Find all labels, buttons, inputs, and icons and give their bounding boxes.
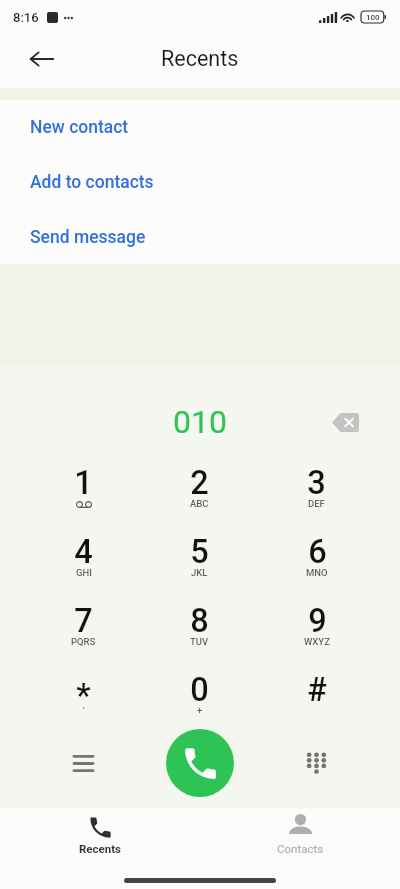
staticText: 3 xyxy=(307,464,326,497)
button[interactable]: Call xyxy=(166,729,234,797)
staticText: ABC xyxy=(190,498,209,509)
staticText: DEF xyxy=(308,498,325,509)
staticText: 5 xyxy=(190,533,209,566)
staticText: 9 xyxy=(308,602,327,635)
button[interactable]: * xyxy=(25,672,141,741)
staticText: 100 xyxy=(366,13,380,22)
button[interactable]: Send message xyxy=(0,210,400,265)
staticText: 010 xyxy=(173,403,227,441)
button[interactable]: 9 xyxy=(258,603,375,672)
button[interactable]: Backspace xyxy=(323,400,367,444)
button[interactable]: Back xyxy=(19,36,64,81)
staticText: 8 xyxy=(190,602,209,635)
staticText: + xyxy=(197,705,203,716)
staticText: 0 xyxy=(190,671,209,704)
staticText: MNO xyxy=(306,567,328,578)
staticText: 7 xyxy=(74,602,93,635)
staticText: Send message xyxy=(30,227,146,248)
button[interactable]: 2 xyxy=(141,465,258,534)
staticText: Contacts xyxy=(277,842,324,855)
button[interactable]: 5 xyxy=(141,534,258,603)
staticText: Recents xyxy=(79,842,122,855)
button[interactable]: 3 xyxy=(258,465,375,534)
button[interactable]: Call log xyxy=(25,729,141,797)
button[interactable]: # xyxy=(258,672,375,741)
button[interactable]: Add to contacts xyxy=(0,155,400,210)
button[interactable]: 0 xyxy=(141,672,258,741)
button[interactable]: 7 xyxy=(25,603,141,672)
button[interactable]: 4 xyxy=(25,534,141,603)
staticText: 4 xyxy=(74,533,93,566)
staticText: # xyxy=(307,671,327,704)
staticText: 6 xyxy=(308,533,327,566)
button[interactable]: 8 xyxy=(141,603,258,672)
staticText: ′ xyxy=(83,705,85,716)
button[interactable]: Recents xyxy=(0,809,200,857)
staticText: New contact xyxy=(30,117,129,138)
staticText: Recents xyxy=(161,46,239,71)
staticText: 2 xyxy=(190,464,209,497)
staticText: * xyxy=(76,677,91,710)
button[interactable]: New contact xyxy=(0,100,400,155)
staticText: GHI xyxy=(76,567,92,578)
staticText: 1 xyxy=(74,464,93,497)
button[interactable]: Contacts xyxy=(200,809,400,857)
staticText: Add to contacts xyxy=(30,172,154,193)
button[interactable]: 6 xyxy=(258,534,375,603)
button[interactable]: 1 xyxy=(25,465,141,534)
button[interactable]: Dialpad xyxy=(258,729,375,797)
staticText: PQRS xyxy=(71,636,96,647)
staticText: 8:16 xyxy=(13,10,39,25)
staticText: JKL xyxy=(191,567,208,578)
staticText: WXYZ xyxy=(304,636,330,647)
staticText: TUV xyxy=(190,636,209,647)
